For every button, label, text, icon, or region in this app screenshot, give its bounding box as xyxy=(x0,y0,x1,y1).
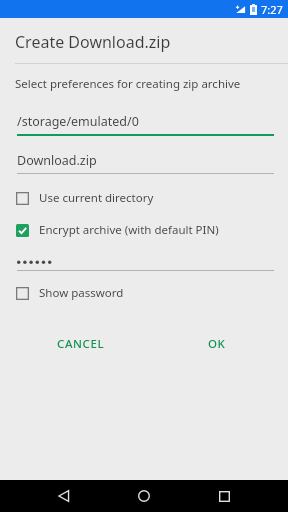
button[interactable]: Encrypt archive (with default PIN) xyxy=(0,218,288,242)
staticText: Encrypt archive (with default PIN) xyxy=(39,222,219,238)
button[interactable]: Use current directory xyxy=(0,186,288,210)
staticText: CANCEL xyxy=(57,336,105,352)
button[interactable]: Show password xyxy=(0,281,288,305)
button[interactable]: /storage/emulated/0 xyxy=(0,113,288,136)
button[interactable]: CANCEL xyxy=(48,330,114,358)
button[interactable]: OK xyxy=(199,330,235,358)
staticText: Select preferences for creating zip arch… xyxy=(15,76,241,92)
staticText: OK xyxy=(208,336,226,352)
staticText: /storage/emulated/0 xyxy=(17,113,139,130)
staticText: Download.zip xyxy=(17,152,97,169)
button[interactable]: Home xyxy=(130,482,158,510)
staticText: Use current directory xyxy=(39,190,154,206)
button[interactable]: Password xyxy=(0,253,288,271)
staticText: Create Download.zip xyxy=(15,31,171,53)
staticText: Show password xyxy=(39,285,124,301)
staticText: 7:27 xyxy=(261,2,283,17)
button[interactable]: Back xyxy=(50,482,78,510)
button[interactable]: Recents xyxy=(210,482,238,510)
button[interactable]: Download.zip xyxy=(0,152,288,174)
